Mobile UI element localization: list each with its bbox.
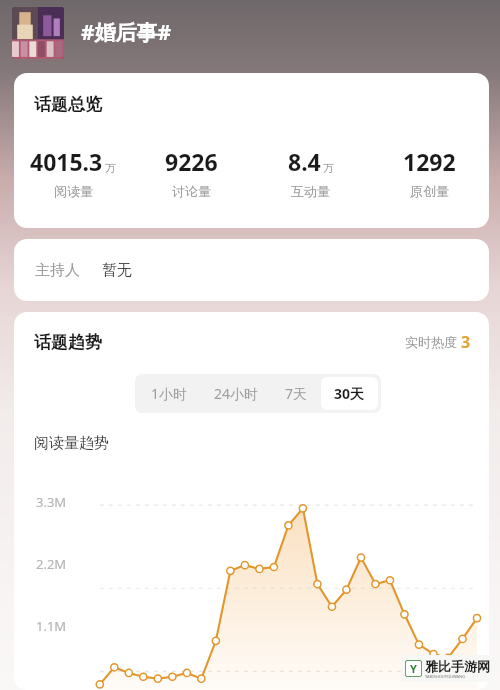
staticText: 话题总览 xyxy=(34,94,102,115)
staticText: 9226 xyxy=(165,146,218,177)
staticText: 4015.3 xyxy=(30,146,103,177)
staticText: YABISHOUYOUWANG xyxy=(425,674,466,679)
button[interactable]: 实时热度 xyxy=(405,331,471,353)
staticText: 30天 xyxy=(334,384,365,403)
staticText: 互动量 xyxy=(291,183,330,199)
staticText: 24小时 xyxy=(214,384,259,403)
staticText: 万 xyxy=(105,161,116,175)
button[interactable]: 30天 xyxy=(321,377,378,410)
staticText: 2.2M xyxy=(36,555,67,573)
staticText: 1小时 xyxy=(151,384,188,403)
staticText: 万 xyxy=(323,161,334,175)
staticText: 7天 xyxy=(285,384,308,403)
button[interactable]: 主持人 xyxy=(14,239,489,301)
staticText: 主持人 xyxy=(35,261,80,280)
staticText: 话题趋势 xyxy=(34,332,102,353)
staticText: 原创量 xyxy=(410,183,449,199)
staticText: 阅读量趋势 xyxy=(34,434,109,453)
staticText: 3 xyxy=(461,331,471,353)
button[interactable]: 9226 xyxy=(132,146,251,199)
staticText: 暂无 xyxy=(102,261,132,280)
button[interactable]: 7天 xyxy=(272,377,321,410)
button[interactable]: Watermark xyxy=(405,658,490,679)
staticText: 实时热度 xyxy=(405,334,457,350)
staticText: 雅比手游网 xyxy=(425,658,490,674)
staticText: 1292 xyxy=(403,146,456,177)
button[interactable]: 4015.3 xyxy=(14,146,132,199)
button[interactable]: 1小时 xyxy=(138,377,201,410)
button[interactable]: 1292 xyxy=(370,146,489,199)
staticText: 1.1M xyxy=(36,617,67,635)
staticText: 8.4 xyxy=(288,146,321,177)
button[interactable]: 8.4 xyxy=(251,146,370,199)
staticText: 3.3M xyxy=(36,493,67,511)
staticText: #婚后事# xyxy=(81,18,172,47)
staticText: Y xyxy=(410,661,417,676)
staticText: 阅读量 xyxy=(54,183,93,199)
button[interactable]: Topic cover xyxy=(12,7,64,59)
button[interactable]: 24小时 xyxy=(201,377,272,410)
staticText: 讨论量 xyxy=(172,183,211,199)
